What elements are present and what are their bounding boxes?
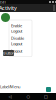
staticText: Logout <box>11 48 22 53</box>
staticText: Disable Logout <box>11 36 24 46</box>
button[interactable]: Back <box>5 93 15 100</box>
staticText: Activity <box>0 4 17 12</box>
staticText: Button <box>3 50 14 56</box>
button[interactable]: Home <box>23 93 33 100</box>
button[interactable]: More options <box>50 4 56 12</box>
staticText: ◁ <box>8 94 11 99</box>
button[interactable]: Recents <box>41 93 51 100</box>
staticText: Enable Logout <box>11 23 22 34</box>
staticText: □ <box>44 94 48 99</box>
staticText: 9:41 <box>0 0 6 5</box>
staticText: Label/Menu <box>0 84 20 89</box>
button[interactable]: Button <box>3 50 14 56</box>
staticText: ○ <box>26 94 29 99</box>
